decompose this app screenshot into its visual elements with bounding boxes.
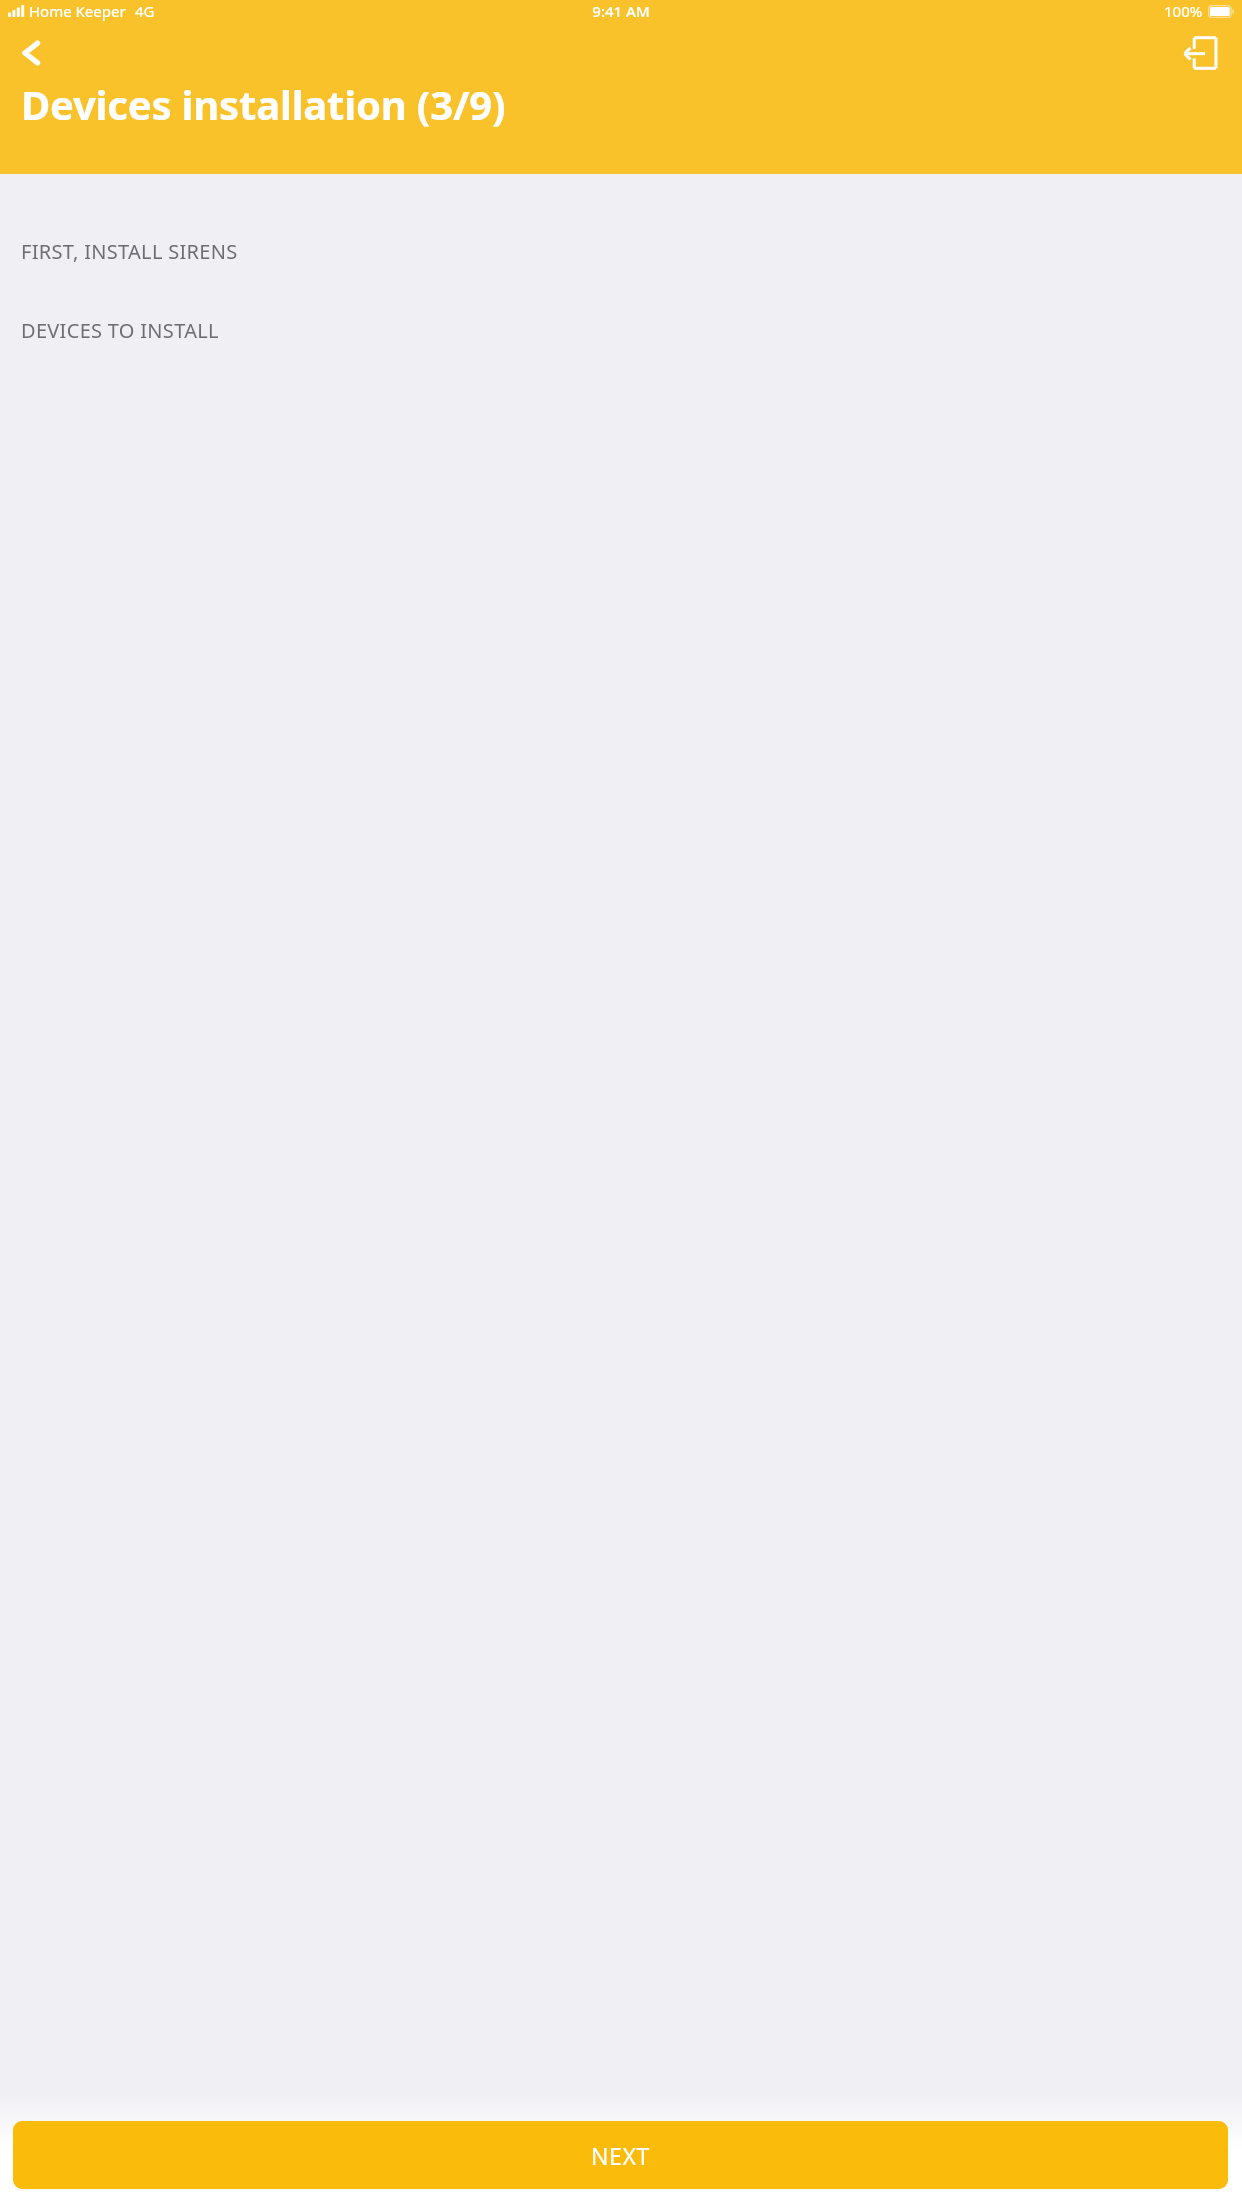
button[interactable]: Back <box>4 26 58 80</box>
staticText: 4G <box>135 1 155 21</box>
staticText: 100% <box>1164 1 1203 21</box>
button[interactable]: Exit <box>1174 26 1228 80</box>
button[interactable]: NEXT <box>13 2121 1228 2189</box>
staticText: DEVICES TO INSTALL <box>21 317 219 344</box>
staticText: NEXT <box>591 2140 650 2171</box>
staticText: Devices installation (3/9) <box>21 77 506 131</box>
staticText: FIRST, INSTALL SIRENS <box>21 238 238 265</box>
staticText: Home Keeper <box>29 1 126 21</box>
staticText: 9:41 AM <box>592 1 650 21</box>
